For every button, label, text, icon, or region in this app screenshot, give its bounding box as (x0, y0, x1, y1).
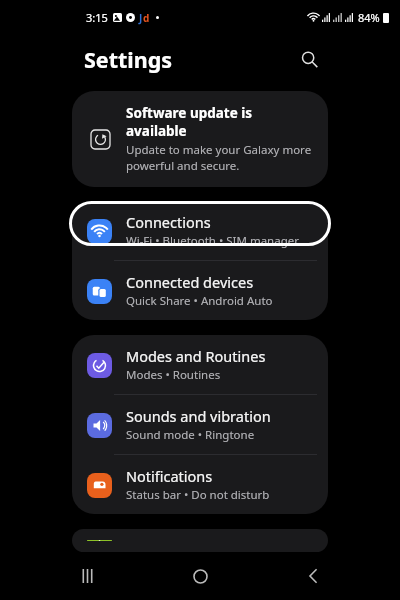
staticText: Sounds and vibration (126, 406, 271, 426)
staticText: Settings (84, 45, 173, 74)
staticText: Connections (126, 212, 211, 232)
staticText: d (143, 11, 150, 25)
button[interactable]: Modes and Routines (72, 335, 328, 394)
staticText: Quick Share • Android Auto (126, 293, 273, 309)
staticText: Modes • Routines (126, 367, 221, 383)
staticText: Update to make your Galaxy more powerful… (126, 142, 312, 173)
button[interactable]: Connections (72, 201, 328, 260)
button[interactable]: Search (292, 42, 326, 76)
staticText: Software update is available (126, 104, 312, 140)
staticText: 3:15 (86, 10, 108, 25)
button[interactable]: Notifications (72, 455, 328, 514)
staticText: Status bar • Do not disturb (126, 487, 270, 503)
button[interactable]: Recents (61, 552, 113, 600)
staticText: 84% (358, 10, 380, 25)
staticText: Wi-Fi • Bluetooth • SIM manager (126, 233, 299, 249)
staticText: J (139, 11, 143, 25)
button[interactable]: Back (287, 552, 339, 600)
staticText: Sound mode • Ringtone (126, 427, 255, 443)
staticText: Notifications (126, 466, 213, 486)
button[interactable]: Software update is available (72, 91, 328, 187)
button[interactable]: Display (72, 529, 328, 552)
button[interactable]: Home (174, 552, 226, 600)
staticText: Connected devices (126, 272, 254, 292)
button[interactable]: Connected devices (72, 261, 328, 320)
staticText: Modes and Routines (126, 346, 266, 366)
button[interactable]: Sounds and vibration (72, 395, 328, 454)
